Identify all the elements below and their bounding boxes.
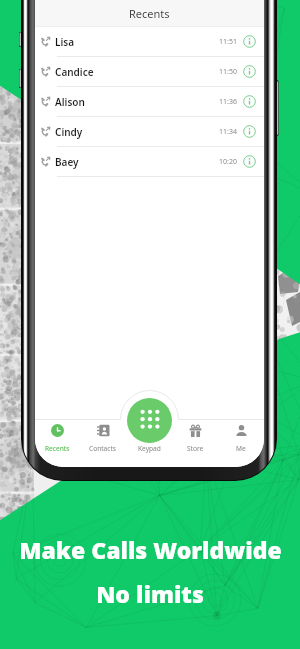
button[interactable]: Alison	[35, 87, 264, 117]
other: Call details	[243, 155, 256, 168]
button[interactable]: Lisa	[35, 27, 264, 57]
staticText: 11:51	[219, 37, 237, 47]
staticText: Make Calls Worldwide	[19, 534, 282, 565]
staticText: 11:50	[219, 67, 237, 77]
button[interactable]: Cindy	[35, 117, 264, 147]
staticText: 11:34	[219, 127, 237, 137]
other: Call details	[243, 95, 256, 108]
staticText: Alison	[55, 95, 85, 109]
button[interactable]: Keypad	[126, 424, 172, 457]
button[interactable]: Keypad	[127, 398, 172, 443]
button[interactable]: Store	[172, 424, 218, 457]
staticText: Lisa	[55, 35, 75, 49]
staticText: Contacts	[89, 444, 117, 453]
staticText: Keypad	[138, 444, 161, 453]
staticText: Recents	[129, 6, 170, 21]
staticText: Candice	[55, 65, 94, 79]
staticText: Baey	[55, 155, 79, 169]
staticText: Recents	[45, 444, 70, 453]
other: Call details	[243, 65, 256, 78]
button[interactable]: Candice	[35, 57, 264, 87]
button[interactable]: Baey	[35, 147, 264, 177]
staticText: Store	[187, 444, 204, 453]
button[interactable]: Me	[218, 424, 264, 457]
staticText: No limits	[96, 578, 204, 609]
staticText: 11:36	[219, 97, 237, 107]
other: Call details	[243, 35, 256, 48]
staticText: Cindy	[55, 125, 83, 139]
button[interactable]: Recents	[35, 424, 80, 457]
button[interactable]: Contacts	[80, 424, 126, 457]
staticText: 10:20	[219, 157, 237, 167]
staticText: Me	[236, 444, 246, 453]
other: Call details	[243, 125, 256, 138]
